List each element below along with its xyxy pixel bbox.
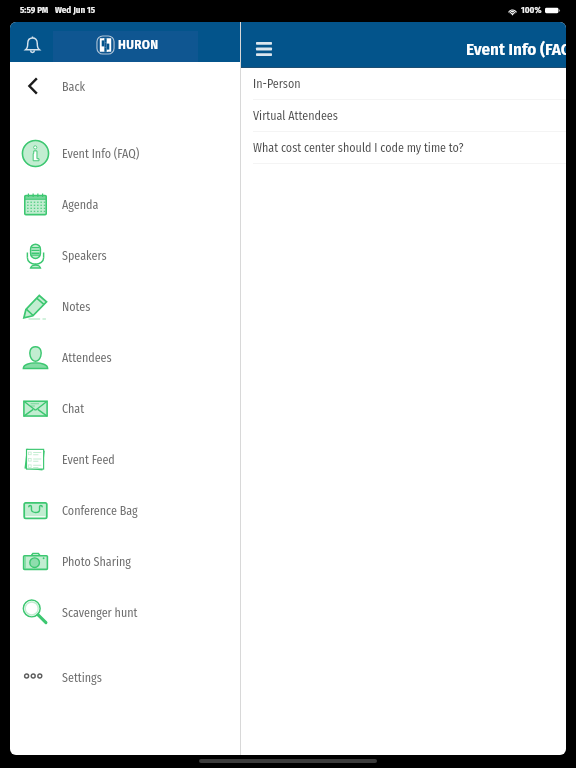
staticText: Speakers [62, 249, 107, 263]
button[interactable]: Menu [246, 22, 282, 67]
button[interactable]: Scavenger hunt [10, 587, 240, 638]
staticText: Virtual Attendees [253, 109, 338, 123]
button[interactable]: In-Person [241, 68, 566, 100]
staticText: 5:59 PM [20, 5, 49, 16]
button[interactable]: Chat [10, 383, 240, 434]
staticText: Agenda [62, 198, 99, 212]
staticText: Event Info (FAQ) [62, 147, 140, 161]
button[interactable]: Notes [10, 281, 240, 332]
staticText: Conference Bag [62, 504, 138, 518]
button[interactable]: Conference Bag [10, 485, 240, 536]
staticText: Notes [62, 300, 91, 314]
button[interactable]: Settings [10, 652, 240, 702]
staticText: HURON [118, 37, 159, 53]
staticText: Settings [62, 671, 102, 685]
button[interactable]: Agenda [10, 179, 240, 230]
staticText: Photo Sharing [62, 555, 131, 569]
staticText: Back [62, 80, 86, 94]
button[interactable]: What cost center should I code my time t… [241, 132, 566, 164]
staticText: Attendees [62, 351, 112, 365]
staticText: What cost center should I code my time t… [253, 141, 464, 155]
button[interactable]: Event Info (FAQ) [10, 128, 240, 179]
staticText: Event Feed [62, 453, 115, 467]
staticText: Event Info (FAQ) [466, 39, 566, 59]
staticText: 100% [521, 5, 542, 16]
button[interactable]: Photo Sharing [10, 536, 240, 587]
button[interactable]: Attendees [10, 332, 240, 383]
staticText: Chat [62, 402, 85, 416]
staticText: In-Person [253, 77, 301, 91]
button[interactable]: Virtual Attendees [241, 100, 566, 132]
button[interactable]: Event Feed [10, 434, 240, 485]
button[interactable]: Back [10, 62, 240, 110]
staticText: Wed Jun 15 [55, 5, 96, 16]
button[interactable]: Speakers [10, 230, 240, 281]
staticText: Scavenger hunt [62, 606, 138, 620]
button[interactable]: Notifications [17, 22, 47, 62]
